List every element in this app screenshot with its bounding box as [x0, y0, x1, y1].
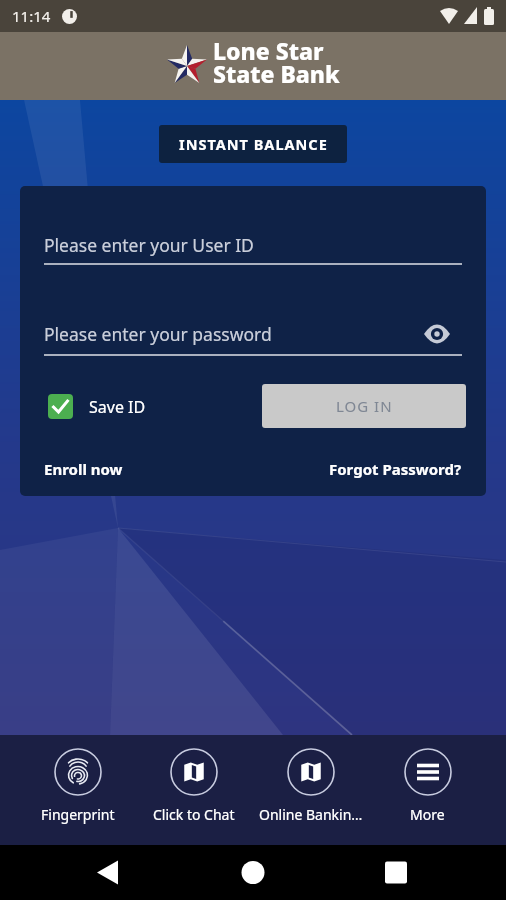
button[interactable]: More	[369, 735, 486, 845]
staticText: More	[410, 805, 445, 824]
button[interactable]: Save ID	[48, 394, 146, 419]
button[interactable]	[337, 845, 506, 900]
staticText: Please enter your User ID	[44, 233, 254, 257]
button[interactable]: Forgot Password?	[329, 459, 462, 479]
button[interactable]: INSTANT BALANCE	[159, 125, 347, 163]
button[interactable]	[168, 845, 337, 900]
staticText: Lone Star	[213, 35, 324, 66]
button[interactable]: LOG IN	[262, 384, 466, 428]
button[interactable]: Click to Chat	[136, 735, 252, 845]
button[interactable]	[0, 845, 168, 900]
staticText: Please enter your password	[44, 322, 272, 346]
staticText: INSTANT BALANCE	[179, 134, 328, 154]
staticText: State Bank	[213, 58, 340, 89]
staticText: Click to Chat	[153, 805, 235, 824]
button[interactable]: Online Bankin…	[252, 735, 369, 845]
button[interactable]: Please enter your password	[44, 322, 462, 346]
staticText: 11:14	[12, 6, 51, 26]
button[interactable]: Fingerprint	[20, 735, 136, 845]
button[interactable]: Please enter your User ID	[44, 233, 462, 257]
staticText: Fingerprint	[41, 805, 115, 824]
staticText: Online Bankin…	[259, 805, 363, 824]
staticText: LOG IN	[336, 396, 393, 416]
staticText: Save ID	[89, 396, 146, 418]
button[interactable]: Lone Star	[166, 35, 340, 97]
button[interactable]: Enroll now	[44, 459, 123, 479]
